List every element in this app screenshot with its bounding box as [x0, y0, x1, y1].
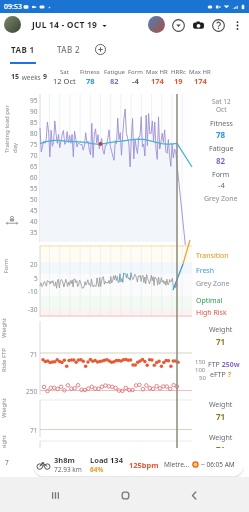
staticText: 85 [30, 118, 38, 127]
staticText: 80 [30, 129, 38, 138]
staticText: Form [128, 68, 143, 76]
staticText: Optimal [196, 296, 223, 306]
staticText: 65 [30, 162, 38, 171]
staticText: 3h8m [54, 455, 75, 465]
staticText: 5 [34, 274, 38, 283]
staticText: 71 [30, 426, 38, 435]
staticText: 95 [30, 96, 38, 105]
staticText: 78 [216, 129, 226, 140]
staticText: 50 [30, 195, 38, 204]
staticText: eFTP [210, 370, 226, 380]
staticText: 250w [220, 360, 240, 370]
button[interactable]: Back [180, 481, 208, 509]
staticText: 7 [5, 458, 9, 467]
staticText: 12 Oct [53, 76, 76, 86]
staticText: 71 [216, 411, 226, 422]
staticText: Weight [0, 398, 8, 418]
staticText: Fresh [196, 266, 215, 276]
staticText: 45 [30, 206, 38, 215]
staticText: Oct [216, 105, 227, 114]
staticText: Weight [0, 318, 8, 338]
staticText: Weight [209, 433, 233, 443]
staticText: 71 [216, 444, 226, 455]
staticText: Sat [60, 68, 69, 76]
staticText: 35 [30, 228, 38, 237]
staticText: 90 [30, 107, 38, 116]
button[interactable]: Account [148, 16, 165, 33]
button[interactable]: Expand [170, 17, 186, 33]
staticText: TAB 1 [11, 44, 35, 55]
staticText: weeks [20, 73, 43, 82]
button[interactable]: TAB 1 [0, 36, 46, 62]
button[interactable]: TAB 2 [46, 36, 92, 62]
staticText: Weight [0, 435, 8, 455]
button[interactable]: Camera [190, 17, 206, 33]
staticText: Max HR [146, 68, 168, 76]
staticText: 09:53 [4, 2, 22, 12]
staticText: Form [1, 258, 9, 273]
staticText: 150 [195, 358, 206, 366]
button[interactable]: Recent apps [41, 481, 69, 509]
staticText: 100 [195, 366, 206, 374]
staticText: ~ 06:05 AM [201, 460, 235, 469]
button[interactable]: 3h8m [33, 453, 244, 476]
staticText: High Risk [196, 308, 227, 318]
button[interactable]: Home [111, 481, 139, 509]
staticText: ? [226, 370, 232, 380]
staticText: 125bpm [129, 460, 159, 470]
staticText: Max HR [189, 68, 211, 76]
staticText: Fatigue [209, 144, 234, 154]
staticText: Load 134 [90, 455, 123, 465]
staticText: -4 [218, 180, 225, 190]
staticText: Fitness [210, 119, 233, 129]
staticText: 40 [30, 217, 38, 226]
staticText: 50 [199, 374, 206, 382]
staticText: 19 [174, 76, 183, 86]
button[interactable]: Add tab [92, 41, 109, 58]
staticText: FTP [208, 360, 220, 370]
staticText: 20 [30, 260, 38, 269]
staticText: 75 [30, 140, 38, 149]
staticText: 70 [30, 151, 38, 160]
staticText: Weight [209, 325, 233, 335]
staticText: 82 [110, 76, 119, 86]
staticText: 78 [86, 76, 95, 86]
staticText: 250 [26, 387, 38, 396]
staticText: -10 [28, 287, 38, 296]
staticText: 55 [30, 184, 38, 193]
staticText: JUL 14 - OCT 19 [32, 19, 98, 31]
staticText: 72.93 km [54, 465, 82, 474]
staticText: 9 [43, 72, 48, 82]
staticText: 174 [151, 76, 164, 86]
staticText: Grey Zone [196, 279, 230, 289]
staticText: 60 [30, 173, 38, 182]
button[interactable]: Help [210, 17, 226, 33]
staticText: HRRc [171, 68, 186, 76]
button[interactable]: More options [229, 17, 245, 33]
staticText: Form [212, 170, 230, 180]
staticText: 71 [216, 336, 226, 347]
staticText: -30 [28, 305, 38, 314]
button[interactable]: Profile photo [4, 16, 21, 33]
staticText: 71 [30, 350, 38, 359]
staticText: Fatigue [104, 68, 125, 76]
staticText: 64% [90, 465, 104, 474]
staticText: Grey Zone [204, 194, 238, 204]
staticText: Ride FTP [0, 348, 8, 372]
staticText: Fitness [80, 68, 100, 76]
button[interactable]: JUL 14 - OCT 19 [32, 19, 108, 31]
staticText: 15 [11, 72, 20, 82]
staticText: Mletre... [164, 460, 190, 469]
staticText: TAB 2 [57, 44, 81, 55]
staticText: 174 [194, 76, 207, 86]
staticText: Training load per day [3, 99, 19, 153]
staticText: -4 [132, 76, 139, 86]
staticText: Weight [209, 400, 233, 410]
staticText: 82 [216, 155, 226, 166]
staticText: Transition [196, 251, 229, 261]
staticText: Sat 12 [212, 97, 231, 106]
